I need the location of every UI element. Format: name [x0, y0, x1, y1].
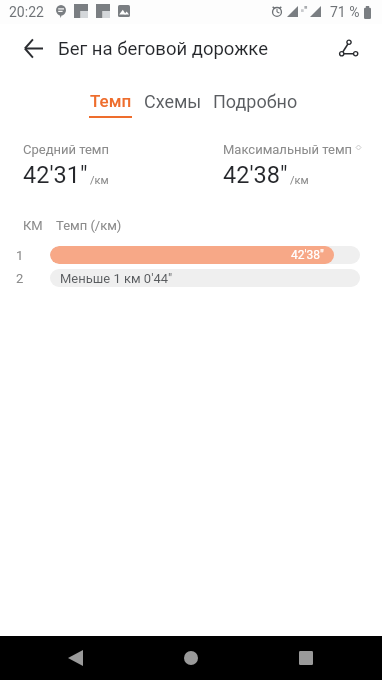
button[interactable]: Схемы: [144, 80, 202, 112]
button[interactable]: Подробно: [213, 80, 298, 112]
staticText: 71 %: [330, 4, 360, 20]
button[interactable]: 1: [0, 246, 382, 264]
staticText: 1: [16, 248, 24, 263]
staticText: Максимальный темп: [223, 142, 353, 157]
staticText: 20:22: [9, 4, 44, 20]
staticText: 42'38": [291, 248, 324, 262]
staticText: КМ: [23, 218, 43, 233]
staticText: Темп: [90, 91, 132, 111]
staticText: 42'38": [223, 161, 288, 189]
staticText: 2: [16, 271, 24, 286]
staticText: Меньше 1 км 0'44": [60, 271, 173, 286]
staticText: /км: [290, 174, 309, 187]
button[interactable]: 2: [0, 269, 382, 287]
staticText: Средний темп: [23, 142, 110, 157]
staticText: Схемы: [144, 91, 202, 112]
button[interactable]: Share: [328, 28, 368, 68]
staticText: Подробно: [213, 91, 298, 112]
staticText: 42'31": [23, 161, 88, 189]
button[interactable]: Темп: [89, 80, 132, 118]
button[interactable]: Home: [167, 636, 215, 680]
button[interactable]: Back: [51, 636, 99, 680]
button[interactable]: Back: [13, 28, 53, 68]
button[interactable]: Recents: [282, 636, 330, 680]
staticText: Бег на беговой дорожке: [58, 38, 269, 60]
staticText: /км: [90, 174, 109, 187]
staticText: Темп (/км): [56, 218, 122, 233]
